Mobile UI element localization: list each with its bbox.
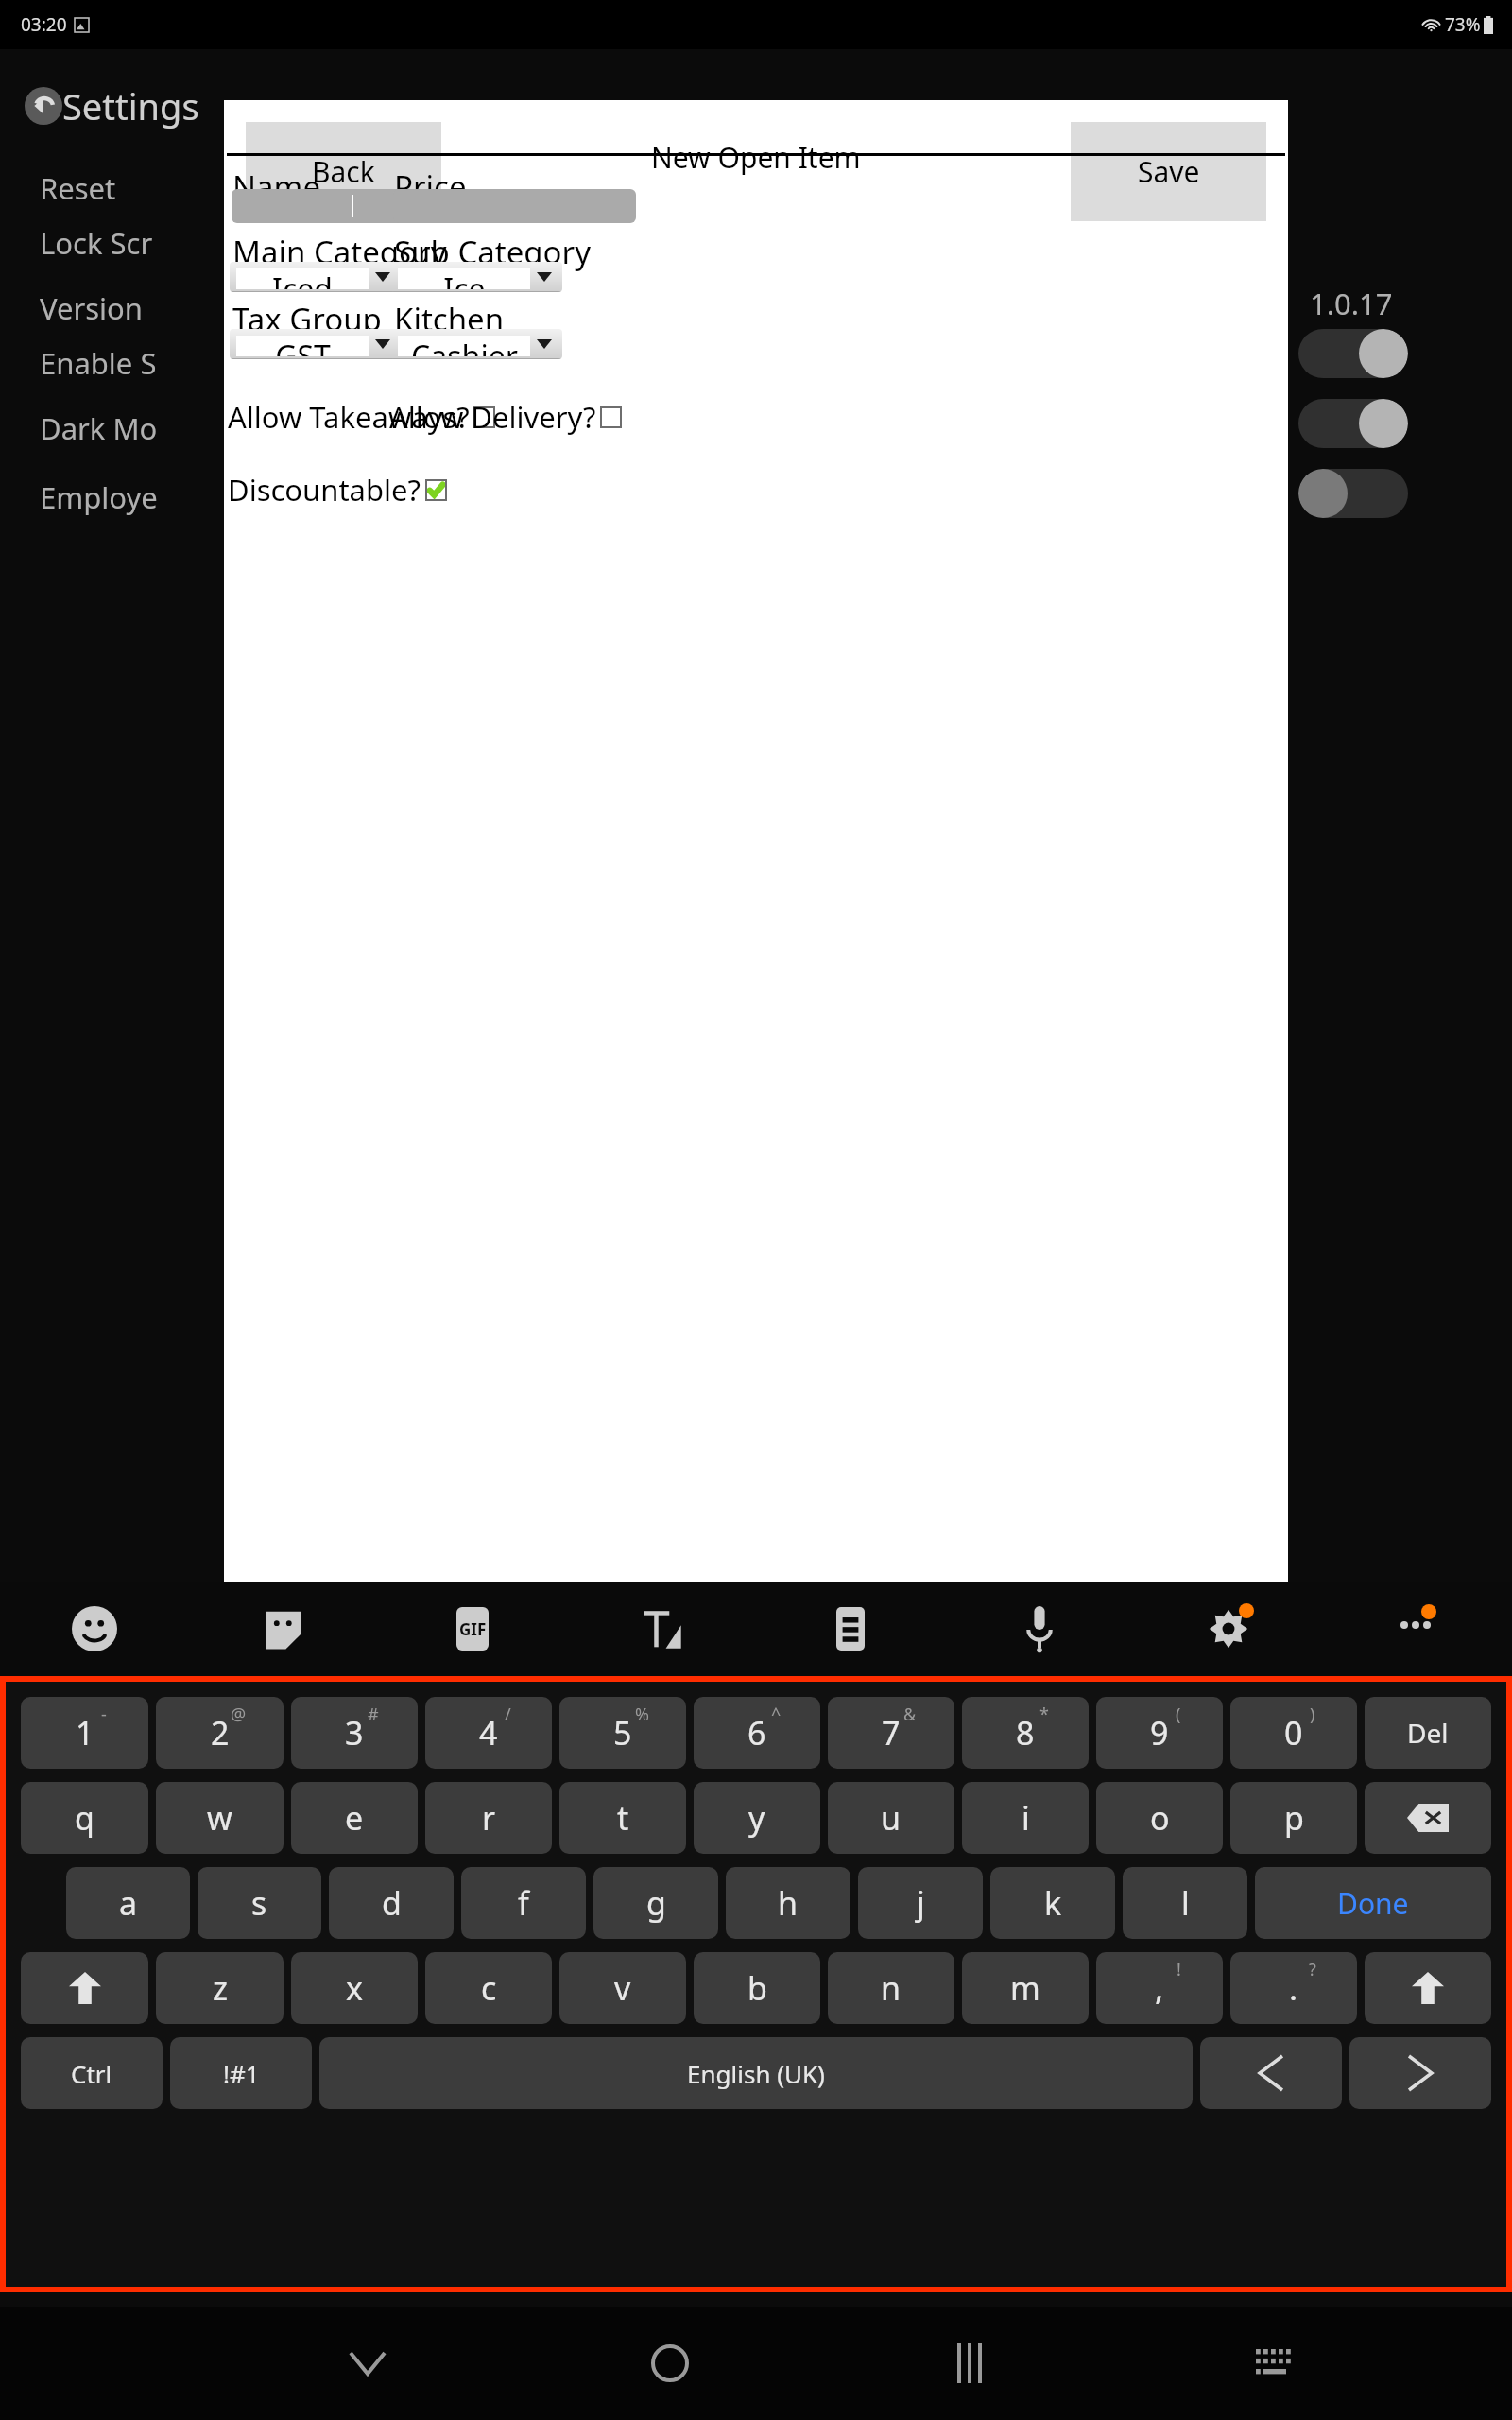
button[interactable]: 9 [1096,1697,1223,1769]
button[interactable]: a [66,1867,190,1939]
button[interactable]: p [1230,1782,1357,1854]
staticText: Save [1138,152,1200,191]
button[interactable]: x [291,1952,418,2024]
button[interactable]: 1 [21,1697,148,1769]
button[interactable]: y [694,1782,820,1854]
button[interactable]: left [1200,2037,1342,2109]
button[interactable]: shift [21,1952,148,2024]
button[interactable]: 6 [694,1697,820,1769]
staticText: 0 [1284,1711,1303,1754]
button[interactable]: Ice [391,262,562,292]
button[interactable]: 7 [828,1697,954,1769]
button[interactable]: g [593,1867,718,1939]
button[interactable]: mic [945,1582,1134,1676]
staticText: % [635,1703,649,1726]
button[interactable]: w [156,1782,283,1854]
button[interactable]: t [559,1782,686,1854]
button[interactable]: Ctrl [21,2037,163,2109]
button[interactable]: gif [378,1582,567,1676]
button[interactable]: GST [230,329,401,359]
button[interactable]: Save [1071,122,1266,221]
button[interactable]: 3 [291,1697,418,1769]
staticText: q [75,1796,94,1840]
button[interactable]: 2 [156,1697,283,1769]
button[interactable]: f [461,1867,586,1939]
button[interactable]: u [828,1782,954,1854]
staticText: Dark Mo [40,408,158,448]
staticText: English (UK) [687,2057,825,2090]
staticText: g [646,1881,666,1925]
button[interactable]: Toggle [1298,469,1408,518]
button[interactable]: z [156,1952,283,2024]
button[interactable]: Toggle [1298,329,1408,378]
button[interactable]: 5 [559,1697,686,1769]
staticText: h [778,1881,799,1925]
button[interactable]: o [1096,1782,1223,1854]
staticText: Discountable? [228,470,421,510]
button[interactable]: e [291,1782,418,1854]
staticText: k [1044,1881,1062,1925]
staticText: l [1181,1881,1190,1925]
button[interactable]: , [1096,1952,1223,2024]
button[interactable]: right [1349,2037,1491,2109]
button[interactable]: Allow Takeaways? [228,397,495,437]
button[interactable]: settings [1134,1582,1323,1676]
button[interactable]: backspace [1365,1782,1491,1854]
button[interactable]: d [329,1867,454,1939]
button[interactable]: Toggle [1298,399,1408,448]
button[interactable]: 0 [1230,1697,1357,1769]
button[interactable]: Cashier [391,329,562,359]
button[interactable]: c [425,1952,552,2024]
staticText: 9 [1150,1711,1169,1754]
button[interactable]: h [726,1867,850,1939]
staticText: m [1010,1966,1040,2010]
button[interactable]: English (UK) [319,2037,1193,2109]
button[interactable]: emoji [0,1582,189,1676]
staticText: ) [1310,1703,1315,1726]
button[interactable]: Recents [821,2307,1124,2420]
staticText: a [119,1881,138,1925]
staticText: ( [1176,1703,1181,1726]
button[interactable]: j [858,1867,983,1939]
staticText: u [881,1796,902,1840]
button[interactable]: Allow Delivery? [389,397,622,437]
button[interactable] [393,189,636,223]
staticText: , [1155,1966,1164,2010]
button[interactable]: m [962,1952,1089,2024]
button[interactable]: more [1323,1582,1512,1676]
staticText: Cashier [411,336,518,356]
button[interactable]: Back [246,122,441,221]
button[interactable]: clipboard [756,1582,945,1676]
button[interactable]: Hide keyboard [216,2307,519,2420]
staticText: @ [231,1703,247,1726]
staticText: Done [1337,1884,1409,1923]
button[interactable]: s [198,1867,321,1939]
button[interactable]: 4 [425,1697,552,1769]
button[interactable]: v [559,1952,686,2024]
button[interactable]: 8 [962,1697,1089,1769]
button[interactable]: Keyboard switcher [1124,2307,1426,2420]
button[interactable]: r [425,1782,552,1854]
button[interactable]: Done [1255,1867,1491,1939]
button[interactable]: Iced Coffee [230,262,401,292]
button[interactable]: . [1230,1952,1357,2024]
staticText: . [1289,1966,1298,2010]
button[interactable]: Home [519,2307,821,2420]
button[interactable]: !#1 [170,2037,312,2109]
button[interactable]: Discountable? [228,470,447,510]
button[interactable]: l [1123,1867,1247,1939]
button[interactable]: n [828,1952,954,2024]
button[interactable]: shift [1365,1952,1491,2024]
staticText: GST [275,336,331,356]
button[interactable]: b [694,1952,820,2024]
button[interactable]: q [21,1782,148,1854]
button[interactable]: Del [1365,1697,1491,1769]
staticText: Name [232,165,321,208]
button[interactable]: sticker [189,1582,378,1676]
button[interactable]: i [962,1782,1089,1854]
staticText: Ice [443,268,486,289]
staticText: j [917,1881,925,1925]
button[interactable] [232,189,474,223]
button[interactable]: text [567,1582,756,1676]
button[interactable]: k [990,1867,1115,1939]
